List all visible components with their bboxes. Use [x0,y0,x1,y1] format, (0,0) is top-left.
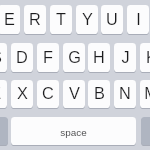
staticText: E [4,10,15,28]
staticText: Y [82,10,93,28]
button[interactable]: H [88,43,110,72]
staticText: J [121,48,130,66]
button[interactable]: C [37,80,59,108]
button[interactable]: K [140,43,150,72]
button[interactable]: D [11,43,33,72]
button[interactable]: I [127,5,149,34]
staticText: D [16,48,28,66]
staticText: X [17,84,28,102]
button[interactable]: J [114,43,136,72]
staticText: M [144,84,150,102]
staticText: Z [0,84,1,102]
button[interactable]: R [24,5,46,34]
button[interactable]: V [63,80,85,108]
staticText: U [106,10,118,28]
button[interactable]: S [0,43,7,72]
staticText: space [60,127,87,138]
staticText: C [42,84,54,102]
staticText: R [29,10,41,28]
button[interactable]: M [140,80,150,108]
staticText: G [68,48,81,66]
staticText: T [56,10,66,28]
button[interactable]: E [0,5,20,34]
button[interactable]: Z [0,80,7,108]
button[interactable]: Y [76,5,98,34]
button[interactable]: F [37,43,59,72]
staticText: B [94,84,105,102]
staticText: V [69,84,80,102]
staticText: F [43,48,53,66]
staticText: S [0,48,2,66]
button[interactable]: T [50,5,72,34]
button[interactable]: U [101,5,123,34]
staticText: H [93,48,105,66]
staticText: K [146,48,150,66]
button[interactable]: N [114,80,136,108]
button[interactable]: B [88,80,110,108]
staticText: N [119,84,131,102]
button[interactable]: X [11,80,33,108]
button[interactable]: G [63,43,85,72]
staticText: I [136,10,141,28]
button[interactable]: space [11,117,136,145]
